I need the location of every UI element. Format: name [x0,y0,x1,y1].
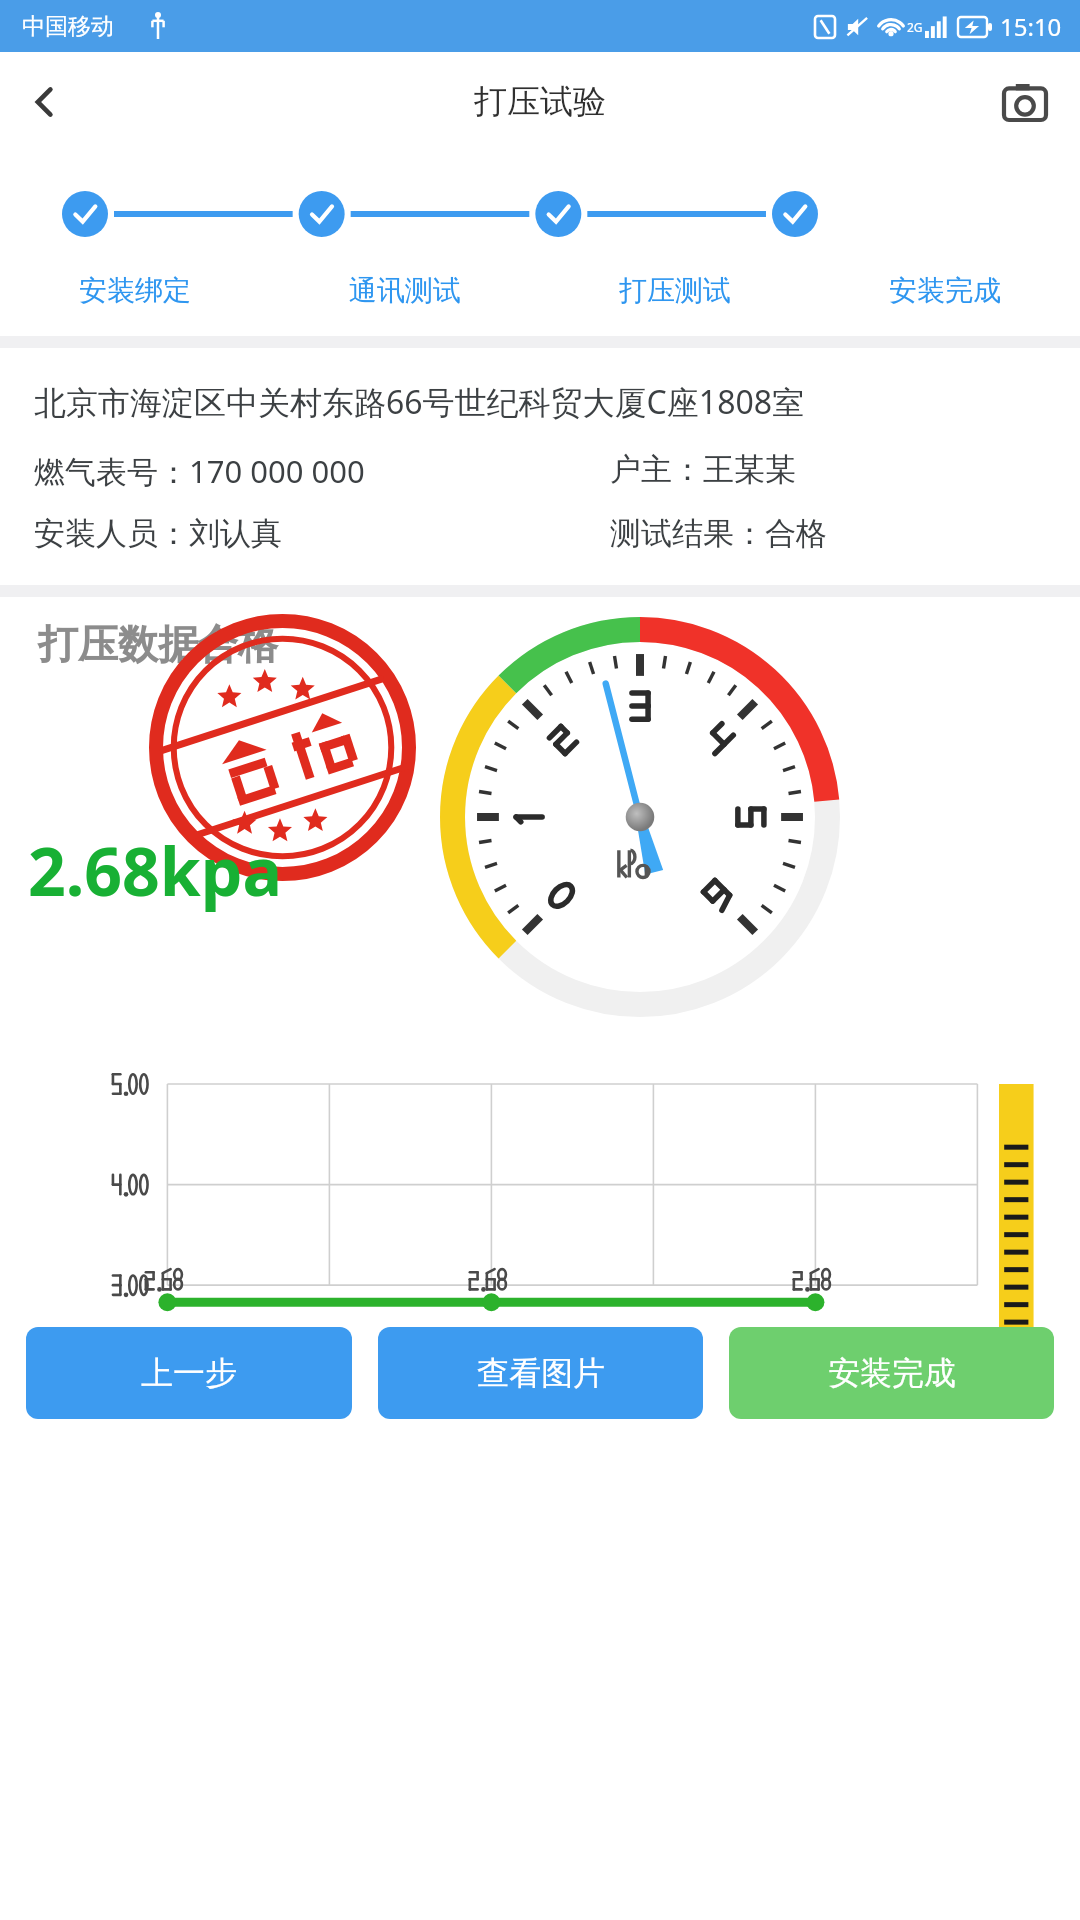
staticText: 打压测试 [619,273,731,308]
staticText: 打压试验 [474,81,606,123]
staticText: 2.68kpa [28,825,282,915]
staticText: 上一步 [141,1353,237,1393]
staticText: 安装绑定 [79,273,191,308]
button[interactable]: Back [10,67,80,137]
staticText: 通讯测试 [349,273,461,308]
staticText: 测试结果：合格 [610,514,1046,553]
button[interactable]: 通讯测试 [270,273,540,308]
button[interactable]: 打压测试 [540,273,810,308]
staticText: 查看图片 [477,1353,605,1393]
staticText: 北京市海淀区中关村东路66号世纪科贸大厦C座1808室 [34,380,805,424]
button[interactable]: 安装绑定 [0,273,270,308]
staticText: 2G [907,19,923,35]
staticText: 户主：王某某 [610,450,1046,489]
staticText: 15:10 [1000,10,1062,43]
staticText: 中国移动 [22,12,114,41]
button[interactable]: Camera [992,69,1058,135]
staticText: 燃气表号：170 000 000 [34,450,610,492]
button[interactable]: 安装完成 [810,273,1080,308]
staticText: 安装完成 [889,273,1001,308]
button[interactable]: 查看图片 [378,1327,703,1419]
button[interactable]: 安装完成 [729,1327,1054,1419]
staticText: 打压数据合格 [38,619,278,669]
button[interactable]: 上一步 [26,1327,352,1419]
staticText: 安装人员：刘认真 [34,514,610,553]
staticText: 安装完成 [828,1353,956,1393]
